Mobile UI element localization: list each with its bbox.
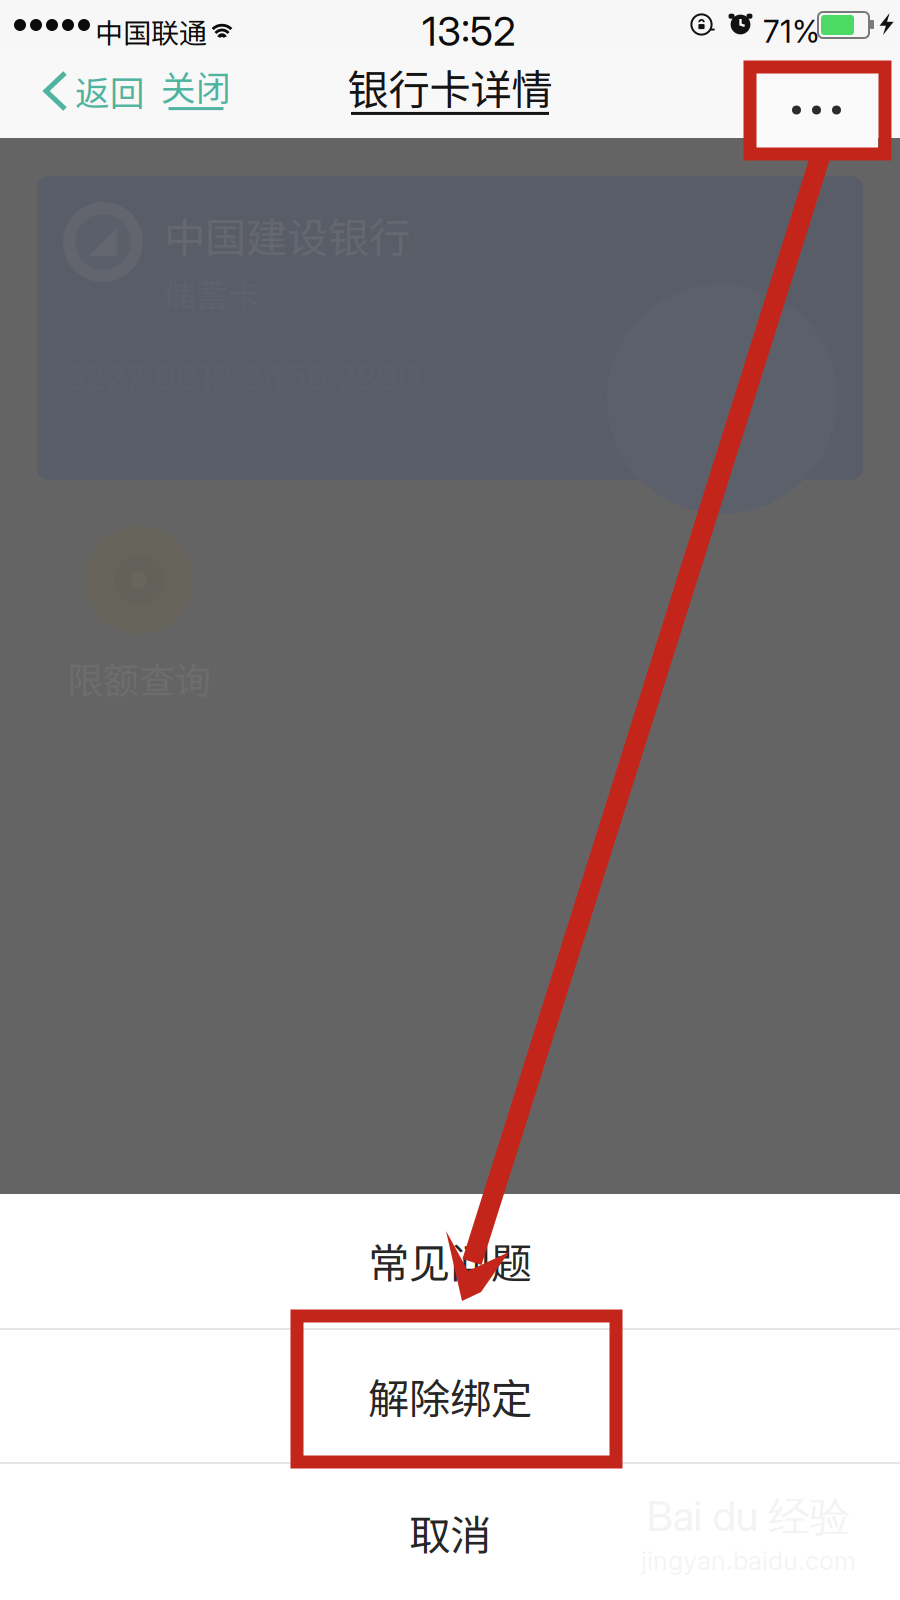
staticText: 中国建设银行 — [164, 205, 410, 265]
button[interactable]: 关闭 — [154, 50, 238, 138]
staticText: 常见问题 — [368, 1231, 532, 1290]
staticText: 返回 — [75, 66, 145, 116]
staticText: 13:52 — [422, 7, 516, 55]
staticText: jingyan.baidu.com — [641, 1545, 856, 1576]
staticText: 限额查询 — [67, 652, 211, 704]
button[interactable]: 返回 — [0, 50, 154, 138]
button[interactable]: More options — [752, 50, 900, 138]
staticText: 银行卡详情 — [347, 57, 552, 117]
staticText: 中国联通 — [95, 11, 207, 51]
staticText: 71% — [763, 13, 820, 50]
button[interactable]: 取消 — [0, 1464, 900, 1600]
button[interactable]: 限额查询 — [49, 525, 229, 705]
staticText: 解除绑定 — [368, 1366, 532, 1426]
staticText: 取消 — [409, 1503, 491, 1562]
button[interactable]: 解除绑定 — [0, 1330, 900, 1462]
staticText: 关闭 — [161, 61, 231, 111]
button[interactable]: 常见问题 — [0, 1193, 900, 1328]
staticText: Bai du 经验 — [646, 1491, 850, 1543]
